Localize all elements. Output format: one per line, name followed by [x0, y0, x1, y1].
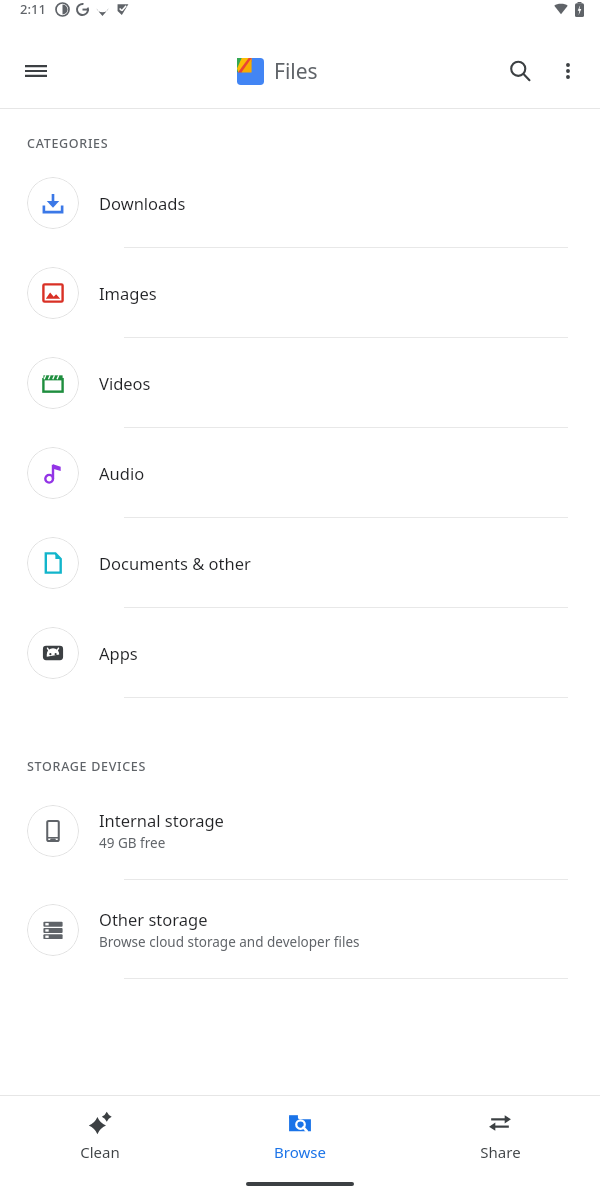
- button[interactable]: Videos: [0, 338, 600, 428]
- button[interactable]: Apps: [0, 608, 600, 698]
- button[interactable]: Browse: [200, 1110, 400, 1162]
- button[interactable]: Open navigation drawer: [12, 47, 60, 95]
- staticText: Internal storage: [99, 809, 224, 831]
- button[interactable]: Internal storage: [0, 781, 600, 880]
- button[interactable]: Share: [400, 1110, 600, 1162]
- staticText: Downloads: [99, 192, 186, 214]
- staticText: Documents & other: [99, 552, 251, 574]
- staticText: Apps: [99, 642, 138, 664]
- staticText: Browse: [274, 1142, 326, 1162]
- staticText: CATEGORIES: [27, 135, 109, 152]
- button[interactable]: Documents & other: [0, 518, 600, 608]
- staticText: Images: [99, 282, 157, 304]
- staticText: Files: [274, 57, 318, 86]
- staticText: Clean: [80, 1142, 120, 1162]
- staticText: Browse cloud storage and developer files: [99, 933, 360, 951]
- staticText: Share: [480, 1142, 521, 1162]
- button[interactable]: Downloads: [0, 158, 600, 248]
- staticText: 49 GB free: [99, 834, 166, 852]
- button[interactable]: Other storage: [0, 880, 600, 979]
- staticText: Audio: [99, 462, 145, 484]
- button[interactable]: More options: [544, 47, 592, 95]
- staticText: Videos: [99, 372, 151, 394]
- staticText: STORAGE DEVICES: [27, 758, 147, 775]
- staticText: Other storage: [99, 908, 208, 930]
- button[interactable]: Images: [0, 248, 600, 338]
- button[interactable]: Search: [496, 47, 544, 95]
- button[interactable]: Audio: [0, 428, 600, 518]
- staticText: 2:11: [20, 0, 46, 18]
- button[interactable]: Clean: [0, 1110, 200, 1162]
